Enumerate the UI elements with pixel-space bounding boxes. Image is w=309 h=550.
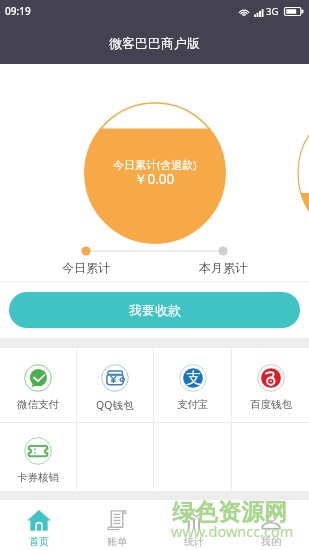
- button[interactable]: QQ钱包: [77, 348, 153, 422]
- button[interactable]: 卡券核销: [0, 423, 76, 491]
- staticText: 我的: [261, 535, 281, 548]
- button[interactable]: 微信支付: [0, 348, 76, 422]
- staticText: 09:19: [5, 4, 31, 18]
- button[interactable]: 支: [154, 348, 231, 422]
- button[interactable]: 百度钱包: [232, 348, 309, 422]
- button[interactable]: 我要收款: [9, 292, 300, 328]
- staticText: 首页: [29, 535, 49, 548]
- staticText: QQ钱包: [96, 398, 134, 412]
- staticText: ￥0.00: [134, 170, 175, 188]
- staticText: 百度钱包: [250, 398, 292, 411]
- staticText: 3G: [266, 5, 279, 18]
- staticText: 今日累计(含退款): [113, 157, 197, 172]
- staticText: 卡券核销: [17, 471, 59, 484]
- staticText: 支付宝: [177, 398, 209, 411]
- staticText: 我要收款: [129, 302, 181, 318]
- staticText: 本月累计: [183, 260, 263, 275]
- staticText: 微客巴巴商户版: [109, 35, 200, 51]
- staticText: 账单: [107, 535, 127, 548]
- staticText: 支: [186, 369, 201, 388]
- staticText: 今日累计: [46, 260, 126, 275]
- button[interactable]: 统计: [155, 500, 232, 550]
- staticText: 绿色资源网: [172, 498, 287, 527]
- staticText: 统计: [184, 535, 204, 548]
- button[interactable]: 账单: [78, 500, 155, 550]
- staticText: 微信支付: [17, 398, 59, 411]
- button[interactable]: 首页: [0, 500, 78, 550]
- staticText: www.downcc.com: [171, 521, 294, 541]
- button[interactable]: 我的: [232, 500, 309, 550]
